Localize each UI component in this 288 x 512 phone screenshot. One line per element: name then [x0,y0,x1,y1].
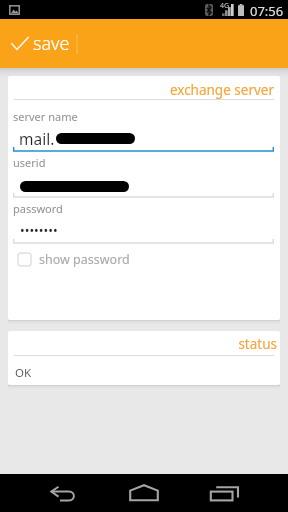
staticText: 07:56 [250,2,284,20]
button[interactable]: Back [40,474,88,512]
staticText: show password [39,251,130,268]
button[interactable]: server name [12,106,276,152]
button[interactable]: Home [120,474,168,512]
button[interactable]: userid [12,152,276,198]
staticText: server name [13,109,78,124]
staticText: status [8,335,277,353]
button[interactable]: password [12,198,276,243]
staticText: mail. [19,128,55,149]
staticText: exchange server [8,81,274,99]
staticText: password [13,201,63,216]
staticText: save [33,31,70,56]
staticText: userid [13,155,46,170]
button[interactable]: Recent apps [200,474,248,512]
staticText: 4G [220,1,230,11]
button[interactable]: save [0,19,288,68]
staticText: •••••••• [20,222,58,239]
staticText: OK [15,365,32,381]
button[interactable]: show password [17,251,130,268]
